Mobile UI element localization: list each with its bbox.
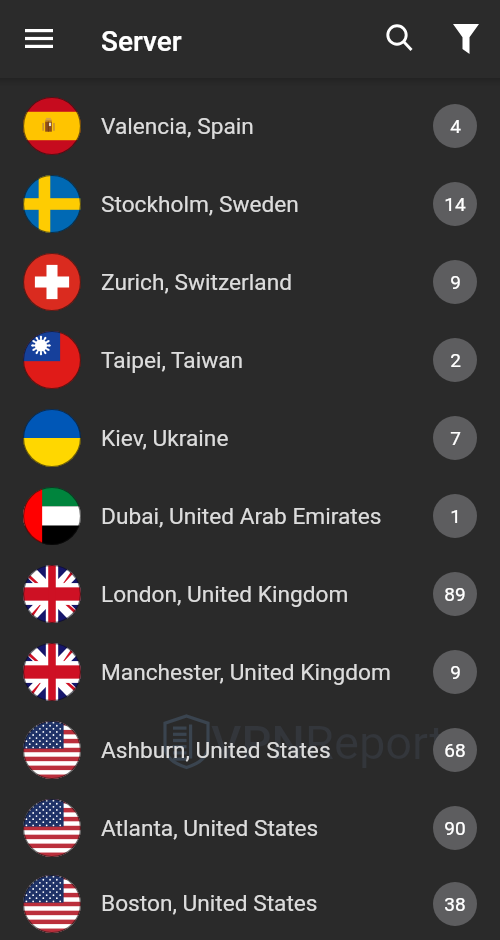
staticText: Zurich, Switzerland [101,269,292,296]
staticText: Taipei, Taiwan [101,347,244,374]
staticText: 68 [444,739,466,761]
button[interactable]: Dubai, United Arab Emirates [0,477,500,555]
staticText: Server [101,25,182,58]
staticText: London, United Kingdom [101,581,349,608]
staticText: Ashburn, United States [101,737,331,764]
button[interactable]: Zurich, Switzerland [0,243,500,321]
button[interactable]: Atlanta, United States [0,789,500,867]
staticText: Dubai, United Arab Emirates [101,503,382,530]
staticText: 9 [450,661,461,683]
staticText: 1 [450,505,461,527]
staticText: 4 [450,115,461,137]
button[interactable]: Kiev, Ukraine [0,399,500,477]
staticText: 38 [444,893,466,915]
staticText: 7 [450,427,461,449]
staticText: 89 [444,583,466,605]
button[interactable]: Taipei, Taiwan [0,321,500,399]
staticText: Kiev, Ukraine [101,425,229,452]
staticText: 14 [444,193,466,215]
button[interactable]: Manchester, United Kingdom [0,633,500,711]
staticText: 90 [444,817,466,839]
staticText: VPN [211,715,305,770]
button[interactable]: London, United Kingdom [0,555,500,633]
button[interactable]: Filter [439,0,493,78]
button[interactable]: Ashburn, United States [0,711,500,789]
staticText: Valencia, Spain [101,113,254,140]
button[interactable]: Menu [0,0,78,78]
button[interactable]: Valencia, Spain [0,87,500,165]
staticText: 2 [450,349,461,371]
staticText: 9 [450,271,461,293]
button[interactable]: Stockholm, Sweden [0,165,500,243]
button[interactable]: Boston, United States [0,867,500,940]
staticText: Stockholm, Sweden [101,191,299,218]
staticText: Atlanta, United States [101,815,319,842]
staticText: Boston, United States [101,890,318,917]
staticText: Reports [305,715,469,770]
staticText: Manchester, United Kingdom [101,659,391,686]
button[interactable]: Search [361,0,439,78]
